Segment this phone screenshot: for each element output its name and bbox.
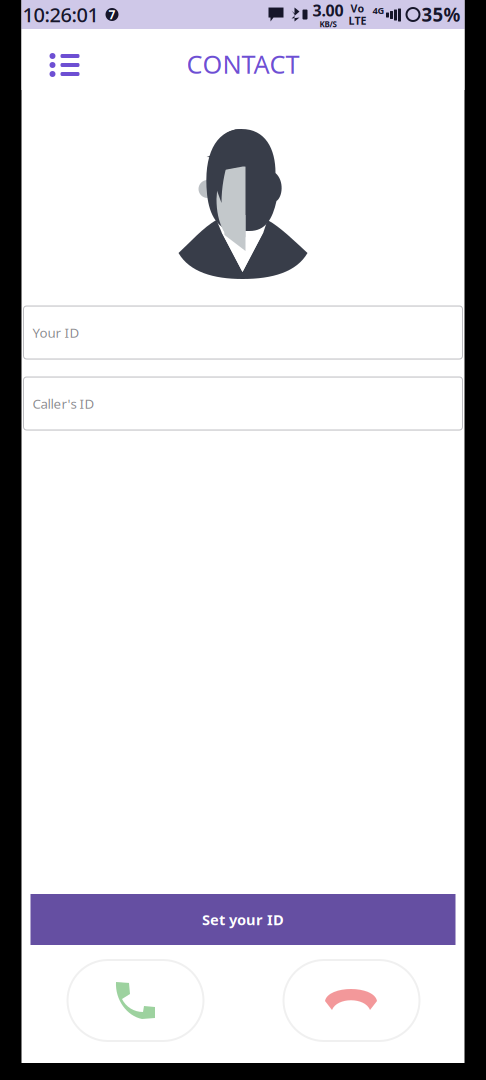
staticText: 3.00 xyxy=(312,0,343,21)
staticText: 35% xyxy=(421,2,460,27)
button[interactable]: Caller's ID xyxy=(23,377,462,430)
staticText: 10:26:01 xyxy=(22,1,98,28)
staticText: 7 xyxy=(108,6,115,22)
staticText: Set your ID xyxy=(202,910,284,929)
button[interactable]: Your ID xyxy=(23,306,462,359)
staticText: KB/S xyxy=(319,19,336,29)
button[interactable]: Call xyxy=(67,960,203,1041)
button[interactable]: Set your ID xyxy=(30,894,455,945)
staticText: LTE xyxy=(348,13,366,28)
staticText: Vo xyxy=(350,1,364,15)
button[interactable]: Menu xyxy=(21,29,99,90)
staticText: 4G xyxy=(372,4,384,17)
staticText: Your ID xyxy=(32,324,79,341)
button[interactable]: End call xyxy=(283,960,419,1041)
staticText: Caller's ID xyxy=(32,395,94,412)
staticText: CONTACT xyxy=(186,47,299,81)
